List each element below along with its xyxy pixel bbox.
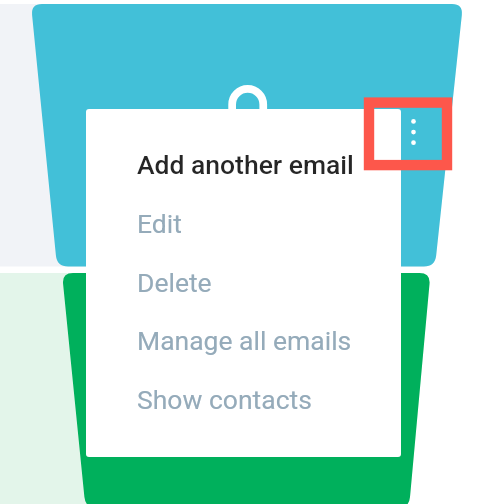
button[interactable]: Show contacts bbox=[86, 370, 401, 429]
staticText: Show contacts bbox=[137, 384, 312, 415]
button[interactable]: Edit bbox=[86, 194, 401, 253]
button[interactable]: More options bbox=[401, 110, 426, 155]
staticText: Manage all emails bbox=[137, 325, 352, 356]
button[interactable]: Manage all emails bbox=[86, 311, 401, 370]
staticText: Add another email bbox=[137, 149, 354, 180]
button[interactable]: Add another email bbox=[86, 135, 401, 194]
staticText: Delete bbox=[137, 267, 212, 298]
button[interactable]: Delete bbox=[86, 253, 401, 312]
staticText: Edit bbox=[137, 208, 182, 239]
